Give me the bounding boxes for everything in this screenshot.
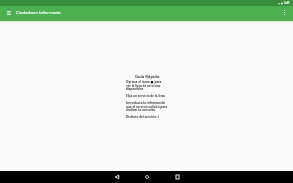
staticText: Oprima el ícono ■ para ver la lista de s… — [126, 80, 162, 91]
button[interactable]: More options — [277, 5, 292, 20]
button[interactable]: Recent apps — [166, 171, 188, 183]
button[interactable]: Open navigation menu — [1, 5, 16, 20]
button[interactable]: Home — [136, 171, 158, 183]
staticText: Disfrute del servicio :) — [126, 115, 160, 119]
button[interactable]: Back — [106, 171, 128, 183]
staticText: Introduzca la información que el servici… — [126, 101, 168, 112]
staticText: Ciudadano Informado — [16, 9, 61, 15]
staticText: 2:41 — [284, 1, 290, 5]
staticText: Elija un servicio de la lista — [126, 94, 165, 98]
staticText: Guía Rápida — [135, 74, 160, 80]
